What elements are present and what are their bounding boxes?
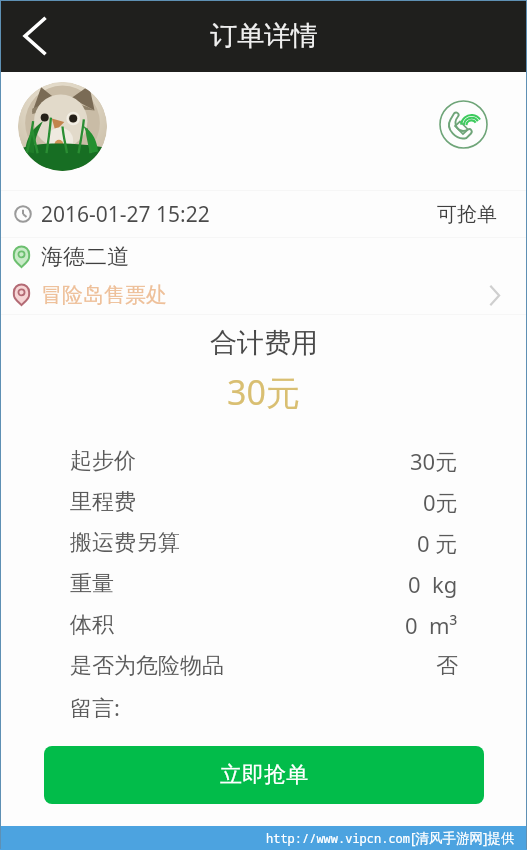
staticText: 立即抢单 xyxy=(220,761,308,789)
staticText: 订单详情 xyxy=(210,19,318,53)
staticText: [清风手游网]提供 xyxy=(411,829,515,847)
staticText: 可抢单 xyxy=(437,202,497,227)
staticText: 0 kg xyxy=(408,569,458,599)
button[interactable]: Call xyxy=(436,97,491,152)
staticText: 海德二道 xyxy=(41,243,129,271)
button[interactable]: Avatar xyxy=(18,82,107,171)
staticText: http://www.vipcn.com xyxy=(266,830,411,846)
staticText: 重量 xyxy=(70,570,114,598)
staticText: 体积 xyxy=(70,611,114,639)
button[interactable]: Back xyxy=(5,6,65,66)
staticText: 0元 xyxy=(423,487,458,517)
staticText: 0 m³ xyxy=(405,610,458,640)
staticText: 留言: xyxy=(70,692,120,722)
staticText: 30元 xyxy=(227,369,300,415)
staticText: 30元 xyxy=(410,446,458,476)
button[interactable]: 立即抢单 xyxy=(44,746,484,804)
staticText: 里程费 xyxy=(70,488,136,516)
staticText: 是否为危险物品 xyxy=(70,652,224,680)
staticText: 冒险岛售票处 xyxy=(41,282,167,308)
staticText: 搬运费另算 xyxy=(70,529,180,557)
staticText: 0 元 xyxy=(417,528,458,558)
staticText: 否 xyxy=(436,652,458,680)
button[interactable]: 冒险岛售票处 xyxy=(13,276,500,314)
staticText: 起步价 xyxy=(70,447,136,475)
staticText: 2016-01-27 15:22 xyxy=(41,200,210,229)
staticText: 合计费用 xyxy=(210,326,318,360)
